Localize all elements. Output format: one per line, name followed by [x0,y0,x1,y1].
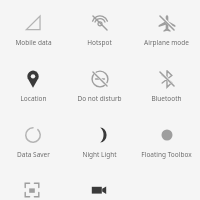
staticText: Night Light [82,150,117,159]
button[interactable]: Hotspot [66,0,133,56]
other: Bluetooth [156,68,178,90]
staticText: Location [20,94,47,103]
other: Screen record [89,180,111,200]
button[interactable]: Night Light [66,112,133,168]
other: Hotspot [89,12,111,34]
staticText: Hotspot [87,38,112,47]
other: Mobile data [22,12,44,34]
button[interactable]: Screen record [66,168,133,200]
other: Floating Toolbox [156,124,178,146]
staticText: Data Saver [17,150,50,159]
button[interactable]: Mobile data [0,0,66,56]
button[interactable]: Do not disturb [66,56,133,112]
other: Airplane mode [156,12,178,34]
other: Do not disturb [89,68,111,90]
button[interactable]: Data Saver [0,112,66,168]
other: Data Saver [22,124,44,146]
staticText: Mobile data [15,38,52,47]
button[interactable]: Screenshot [0,168,66,200]
other: Screenshot [22,180,44,200]
staticText: Do not disturb [77,94,122,103]
other: Night Light [89,124,111,146]
staticText: Bluetooth [151,94,182,103]
button[interactable]: Bluetooth [133,56,200,112]
button[interactable]: Floating Toolbox [133,112,200,168]
staticText: Airplane mode [144,38,189,47]
button[interactable]: Airplane mode [133,0,200,56]
button[interactable]: Location [0,56,66,112]
staticText: Floating Toolbox [141,150,192,159]
other: Location [22,68,44,90]
